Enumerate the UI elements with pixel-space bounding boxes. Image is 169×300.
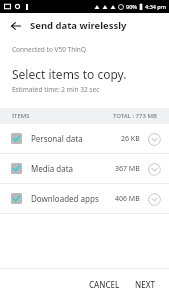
- button[interactable]: Expand: [147, 192, 161, 206]
- staticText: Personal data: [31, 133, 83, 144]
- button[interactable]: NEXT: [129, 274, 162, 295]
- button[interactable]: CANCEL: [83, 274, 126, 295]
- staticText: Connected to V50 ThinQ: [12, 45, 86, 54]
- button[interactable]: Expand: [147, 132, 161, 146]
- staticText: 26 KB: [121, 134, 140, 144]
- button[interactable]: Toggle selection: [0, 124, 169, 153]
- button[interactable]: Toggle selection: [11, 163, 22, 174]
- staticText: 90%: [126, 3, 137, 10]
- button[interactable]: Toggle selection: [11, 133, 22, 144]
- staticText: Estimated time: 2 min 32 sec: [12, 85, 100, 94]
- button[interactable]: Toggle selection: [0, 184, 169, 213]
- staticText: TOTAL : 773 MB: [113, 112, 157, 120]
- staticText: Downloaded apps: [31, 193, 99, 204]
- button[interactable]: Back: [7, 17, 25, 35]
- staticText: 4:34 pm: [145, 3, 166, 10]
- staticText: Select items to copy.: [12, 66, 127, 82]
- staticText: Send data wirelessly: [30, 19, 127, 32]
- staticText: Media data: [31, 163, 74, 174]
- staticText: 406 MB: [115, 194, 140, 204]
- staticText: 367 MB: [115, 164, 140, 174]
- staticText: ITEMS: [12, 112, 30, 120]
- button[interactable]: Expand: [147, 162, 161, 176]
- staticText: CANCEL: [89, 279, 120, 290]
- button[interactable]: Toggle selection: [11, 193, 22, 204]
- button[interactable]: Toggle selection: [0, 154, 169, 183]
- staticText: NEXT: [135, 279, 156, 290]
